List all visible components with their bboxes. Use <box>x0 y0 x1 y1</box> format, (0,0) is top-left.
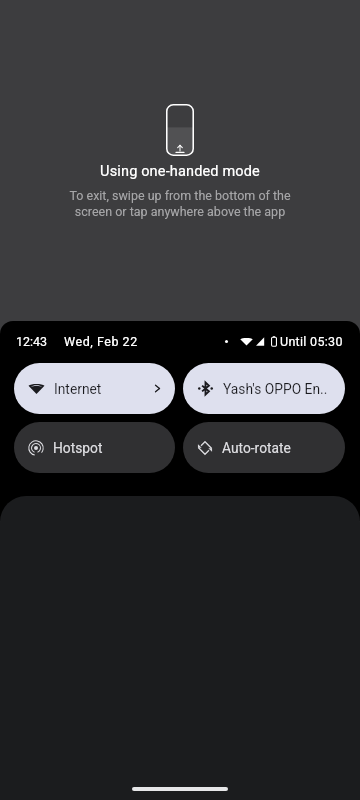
button[interactable]: Internet <box>14 363 175 414</box>
staticText: Yash's OPPO En.. <box>223 381 328 397</box>
staticText: Hotspot <box>53 440 103 456</box>
staticText: Using one-handed mode <box>100 163 260 180</box>
staticText: Internet <box>54 381 102 397</box>
staticText: 12:43 <box>16 334 48 349</box>
staticText: To exit, swipe up from the bottom of the… <box>69 188 291 219</box>
staticText: Auto-rotate <box>222 440 291 456</box>
staticText: Until 05:30 <box>280 334 343 349</box>
button[interactable]: Hotspot <box>14 422 175 473</box>
button[interactable]: Yash's OPPO En.. <box>183 363 345 414</box>
button[interactable]: Auto-rotate <box>183 422 345 473</box>
staticText: Wed, Feb 22 <box>64 334 138 349</box>
